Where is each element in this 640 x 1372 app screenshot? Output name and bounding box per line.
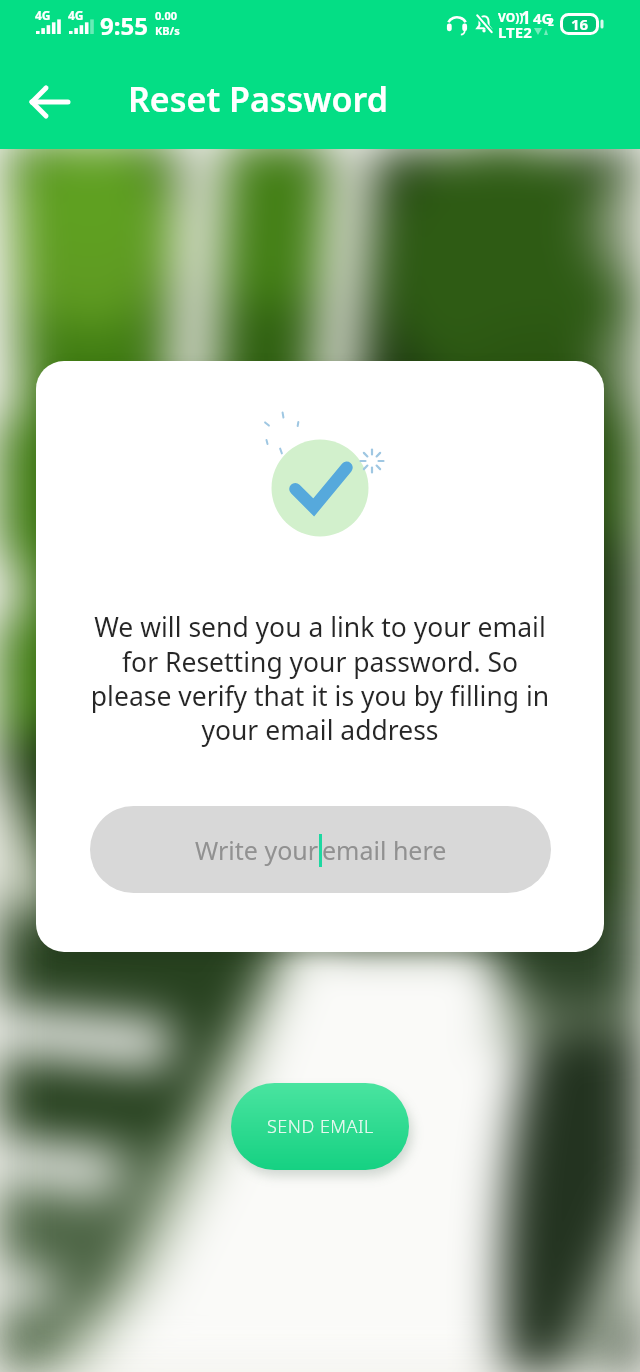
staticText: LTE2	[498, 22, 532, 42]
button[interactable]: Back	[20, 72, 80, 132]
staticText: 1	[521, 6, 531, 29]
staticText: 4G	[68, 7, 84, 23]
staticText: 16	[571, 14, 589, 34]
staticText: 4G	[35, 7, 51, 23]
staticText: 9:55	[100, 9, 148, 42]
button[interactable]: Write your	[90, 806, 551, 893]
button[interactable]: SEND EMAIL	[231, 1083, 409, 1170]
staticText: 2	[548, 15, 554, 29]
staticText: VO))	[498, 9, 524, 25]
staticText: SEND EMAIL	[267, 1114, 374, 1139]
staticText: 4G	[533, 8, 553, 28]
staticText: 0.00	[155, 8, 177, 23]
staticText: KB/s	[155, 23, 180, 38]
staticText: email here	[322, 833, 447, 867]
staticText: We will send you a link to your email fo…	[85, 609, 555, 747]
staticText: Reset Password	[128, 76, 388, 122]
staticText: Write your	[195, 833, 319, 867]
